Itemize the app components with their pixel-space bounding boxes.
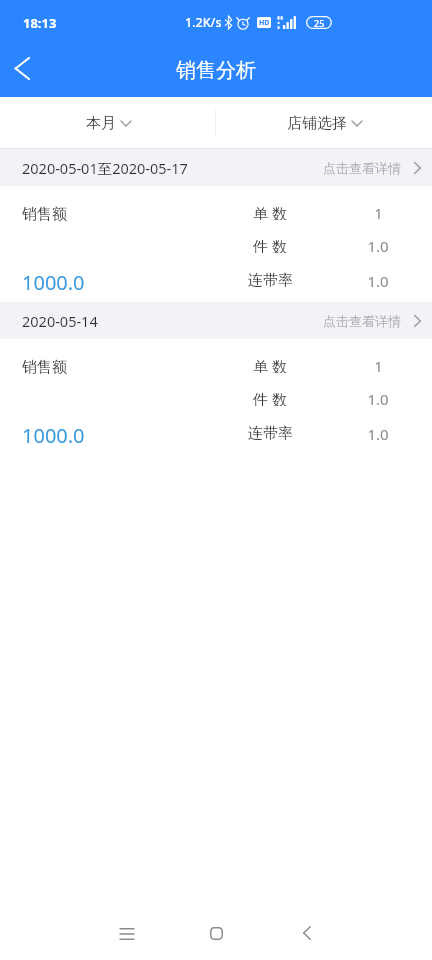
staticText: 2020-05-14 [22,311,98,331]
staticText: 销售额 [22,358,67,377]
button[interactable]: Back [0,46,44,90]
staticText: 18:13 [23,14,57,32]
button[interactable]: Home [188,901,244,957]
staticText: 1000.0 [22,422,85,449]
staticText: 1.2K/s [185,14,222,31]
staticText: 连带率 [248,424,293,441]
staticText: 点击查看详情 [323,313,401,329]
button[interactable]: 2020-05-01至2020-05-17 [0,149,432,186]
button[interactable]: Back [279,901,335,957]
staticText: HD [259,18,270,28]
staticText: 本月 [86,114,116,133]
staticText: 连带率 [248,271,293,288]
staticText: 1 [374,356,383,373]
staticText: 1.0 [367,236,389,253]
staticText: 件 数 [253,236,287,253]
button[interactable]: 本月 [0,97,216,149]
staticText: 销售额 [22,205,67,224]
staticText: 25 [314,17,325,29]
staticText: 件 数 [253,389,287,406]
staticText: 1000.0 [22,269,85,296]
staticText: 销售分析 [176,58,256,83]
button[interactable]: 店铺选择 [216,97,432,149]
staticText: 单 数 [253,203,287,220]
staticText: 1 [374,203,383,220]
staticText: 1.0 [367,389,389,406]
staticText: 1.0 [367,271,389,288]
button[interactable]: 2020-05-14 [0,302,432,339]
staticText: 1.0 [367,424,389,441]
staticText: 单 数 [253,356,287,373]
staticText: 2020-05-01至2020-05-17 [22,158,188,178]
button[interactable]: Recent apps [99,901,155,957]
staticText: 点击查看详情 [323,160,401,176]
staticText: 店铺选择 [287,114,347,133]
